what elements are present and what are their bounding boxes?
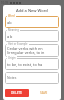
staticText: Meaning [8,28,19,32]
staticText: Add a New Word [16,8,48,13]
button[interactable]: DELETE [5,89,29,97]
staticText: a b [7,34,13,39]
button[interactable]: SAVE [37,89,51,97]
staticText: Word [8,14,15,18]
staticText: DELETE [11,91,23,95]
button[interactable]: a b [5,30,59,42]
button[interactable]: Cedar verbs with en (irregular verbs, to… [5,44,59,57]
button[interactable]: to be, to exist, to ha [5,58,59,70]
staticText: Notes [7,75,17,80]
staticText: SAVE [40,91,48,95]
staticText: ab [7,20,12,25]
staticText: to be, to exist, to ha [7,62,43,67]
staticText: Origin [8,56,16,60]
staticText: Hint or Example [8,42,28,46]
button[interactable]: ab [5,16,59,28]
staticText: 10:09 [1,1,9,4]
staticText: Cedar verbs with en (irregular verbs, to… [7,46,45,55]
button[interactable]: Notes [5,72,59,84]
